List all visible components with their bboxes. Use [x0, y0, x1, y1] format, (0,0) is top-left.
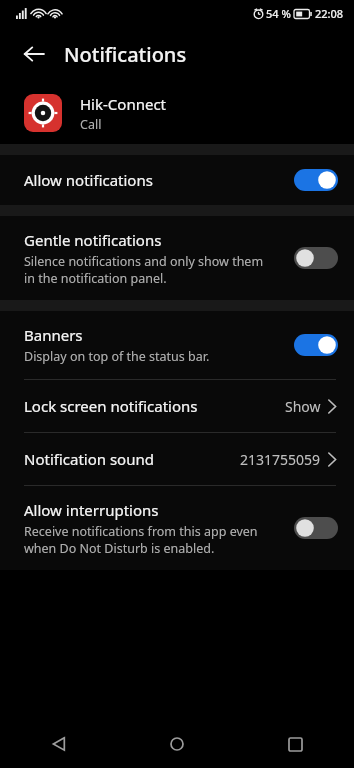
staticText: 54 % [266, 6, 291, 21]
staticText: Allow interruptions [24, 500, 159, 520]
button[interactable]: Hik-Connect [0, 82, 354, 144]
button[interactable]: Notification sound [0, 433, 354, 485]
staticText: Display on top of the status bar. [24, 348, 210, 365]
button[interactable]: Home [153, 720, 201, 768]
button[interactable]: Allow notifications [0, 155, 354, 205]
staticText: Hik-Connect [80, 94, 166, 114]
staticText: Silence notifications and only show them… [24, 253, 264, 286]
button[interactable]: Gentle notifications [0, 216, 354, 300]
staticText: Show [285, 397, 321, 416]
staticText: Receive notifications from this app even… [24, 523, 258, 556]
button[interactable]: Banners [0, 311, 354, 379]
staticText: Allow notifications [24, 170, 153, 190]
button[interactable]: Lock screen notifications [0, 380, 354, 432]
staticText: Lock screen notifications [24, 396, 285, 416]
staticText: 22:08 [315, 6, 344, 21]
staticText: Call [80, 116, 102, 133]
staticText: Notifications [64, 41, 187, 68]
button[interactable]: Back [12, 32, 56, 76]
button[interactable]: Allow interruptions [0, 486, 354, 570]
button[interactable]: Back [35, 720, 83, 768]
staticText: Notification sound [24, 449, 240, 469]
staticText: 2131755059 [240, 450, 321, 469]
staticText: Gentle notifications [24, 230, 162, 250]
button[interactable]: Recent apps [271, 720, 319, 768]
staticText: Banners [24, 325, 83, 345]
